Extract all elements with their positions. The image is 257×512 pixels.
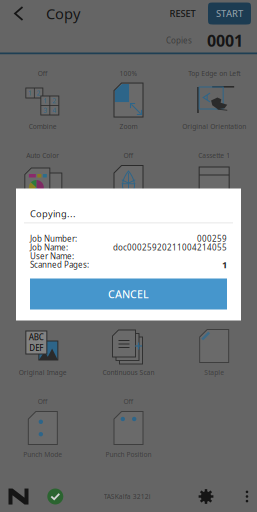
staticText: Copies xyxy=(166,35,192,46)
staticText: Top Edge on Left xyxy=(188,69,240,78)
staticText: 3 xyxy=(43,106,47,115)
staticText: Punch Position xyxy=(105,450,151,459)
staticText: Original Image xyxy=(19,368,67,377)
button[interactable] xyxy=(0,218,86,300)
staticText: doc00025920211004214055 xyxy=(113,242,227,253)
staticText: 1 xyxy=(222,259,227,271)
staticText: Copy xyxy=(46,4,80,23)
button[interactable]: Back xyxy=(0,0,46,29)
staticText: 0001 xyxy=(207,30,243,51)
button[interactable]: NFC xyxy=(0,479,47,512)
button[interactable]: Off xyxy=(86,382,171,464)
staticText: Cassette 1 xyxy=(198,151,230,160)
staticText: START xyxy=(216,7,243,20)
staticText: DEF xyxy=(29,342,43,353)
button[interactable]: Off xyxy=(86,136,171,218)
button[interactable]: Off xyxy=(0,382,86,464)
staticText: Job Name: xyxy=(30,242,68,253)
staticText: 2 xyxy=(37,89,41,97)
button[interactable]: Cassette 1 xyxy=(171,136,257,218)
staticText: Punch Mode xyxy=(23,450,62,459)
staticText: Staple xyxy=(204,368,224,377)
button[interactable]: RESET xyxy=(161,2,204,24)
button[interactable] xyxy=(86,300,171,382)
staticText: Off xyxy=(38,69,48,78)
staticText: TASKalfa 3212i xyxy=(104,492,151,501)
staticText: 1 xyxy=(43,96,47,105)
staticText: Scanned Pages: xyxy=(30,259,89,270)
staticText: Copying... xyxy=(30,207,76,220)
button[interactable]: 100% xyxy=(86,54,171,136)
staticText: Off xyxy=(123,151,133,160)
staticText: Job Number: xyxy=(30,233,77,244)
staticText: Off xyxy=(123,397,133,406)
staticText: Off xyxy=(38,397,48,406)
staticText: Color Selection xyxy=(19,204,67,213)
staticText: Original Orientation xyxy=(182,122,246,131)
button[interactable]: Off xyxy=(0,54,86,136)
staticText: 1 xyxy=(28,89,32,97)
staticText: 2 xyxy=(52,96,56,105)
staticText: 000259 xyxy=(197,233,227,244)
button[interactable] xyxy=(171,218,257,300)
button[interactable] xyxy=(86,218,171,300)
staticText: Combine xyxy=(29,122,57,131)
staticText: Zoom xyxy=(119,122,137,131)
staticText: 100% xyxy=(119,69,137,78)
staticText: CANCEL xyxy=(108,287,149,301)
button[interactable]: Device status xyxy=(47,479,63,512)
button[interactable]: CANCEL xyxy=(30,278,227,309)
staticText: Auto Color xyxy=(26,151,59,160)
staticText: ABC xyxy=(29,332,44,342)
button[interactable]: More options xyxy=(237,479,257,512)
staticText: User Name: xyxy=(30,251,74,261)
staticText: Continuous Scan xyxy=(102,368,154,377)
button[interactable] xyxy=(171,300,257,382)
button[interactable]: Top Edge on Left xyxy=(171,54,257,136)
staticText: 4 xyxy=(52,106,56,115)
button[interactable] xyxy=(0,300,86,382)
button[interactable]: Auto Color xyxy=(0,136,86,218)
staticText: RESET xyxy=(169,7,195,20)
button[interactable]: START xyxy=(208,2,251,24)
button[interactable]: Settings xyxy=(191,479,221,512)
